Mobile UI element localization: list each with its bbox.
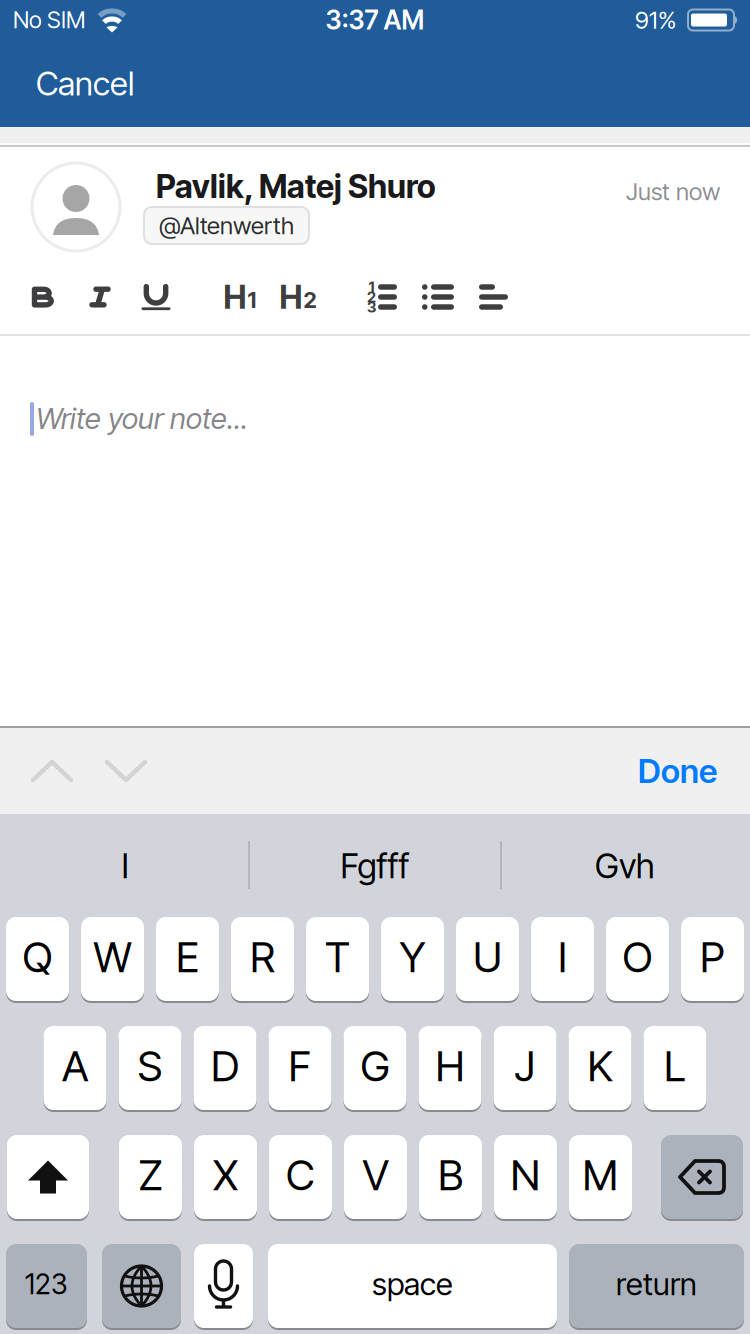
button[interactable]: Z — [119, 1135, 182, 1221]
staticText: O — [622, 932, 652, 982]
button[interactable]: Numbered list — [354, 275, 410, 319]
button[interactable]: Cancel — [36, 63, 134, 103]
button[interactable]: M — [569, 1135, 632, 1221]
button[interactable]: P — [681, 917, 744, 1003]
staticText: S — [137, 1041, 162, 1091]
staticText: 1 — [368, 278, 374, 296]
staticText: Z — [138, 1150, 162, 1200]
staticText: @Altenwerth — [159, 211, 294, 240]
staticText: No SIM — [13, 6, 85, 34]
button[interactable]: X — [194, 1135, 257, 1221]
staticText: L — [664, 1041, 686, 1091]
button[interactable]: @Altenwerth — [144, 207, 309, 244]
staticText: 3 — [367, 298, 376, 316]
staticText: Write your note... — [36, 401, 248, 436]
staticText: F — [288, 1041, 311, 1091]
button[interactable]: I — [0, 845, 250, 886]
button[interactable]: H — [418, 1026, 481, 1112]
staticText: H — [223, 278, 246, 316]
button[interactable]: Y — [381, 917, 444, 1003]
button[interactable]: V — [344, 1135, 407, 1221]
staticText: return — [616, 1265, 697, 1303]
button[interactable]: A — [43, 1026, 106, 1112]
button[interactable]: space — [268, 1244, 557, 1330]
staticText: A — [62, 1041, 88, 1091]
staticText: Gvh — [595, 845, 655, 886]
button[interactable]: O — [606, 917, 669, 1003]
button[interactable]: T — [306, 917, 369, 1003]
button[interactable]: Next keyboard — [102, 1244, 181, 1330]
button[interactable]: Shift — [7, 1135, 89, 1221]
button[interactable]: Heading 1 — [212, 275, 268, 319]
button[interactable]: S — [118, 1026, 181, 1112]
staticText: J — [514, 1041, 535, 1091]
staticText: D — [211, 1041, 239, 1091]
button[interactable]: R — [231, 917, 294, 1003]
staticText: G — [360, 1041, 389, 1091]
staticText: H — [279, 278, 302, 316]
staticText: N — [510, 1150, 540, 1200]
staticText: 2 — [303, 287, 316, 313]
staticText: W — [93, 932, 131, 982]
staticText: Done — [638, 751, 717, 791]
staticText: X — [213, 1150, 238, 1200]
staticText: V — [362, 1150, 388, 1200]
staticText: 123 — [25, 1267, 68, 1301]
button[interactable]: K — [568, 1026, 631, 1112]
staticText: C — [286, 1150, 315, 1200]
button[interactable]: I — [531, 917, 594, 1003]
button[interactable]: Q — [6, 917, 69, 1003]
staticText: 1 — [247, 287, 256, 313]
button[interactable]: N — [494, 1135, 557, 1221]
staticText: K — [587, 1041, 612, 1091]
button[interactable]: Underline — [128, 275, 184, 319]
staticText: U — [473, 932, 502, 982]
staticText: Fgfff — [340, 845, 409, 886]
staticText: 91% — [635, 5, 676, 34]
staticText: I — [121, 845, 128, 886]
button[interactable]: L — [643, 1026, 706, 1112]
button[interactable]: Bold — [16, 275, 72, 319]
button[interactable]: B — [419, 1135, 482, 1221]
button[interactable]: Paragraph style — [466, 275, 521, 319]
staticText: P — [700, 932, 725, 982]
staticText: B — [438, 1150, 463, 1200]
staticText: Just now — [626, 177, 720, 206]
button[interactable]: Dictate — [194, 1244, 253, 1330]
button[interactable]: W — [81, 917, 144, 1003]
button[interactable]: Numbers — [6, 1244, 87, 1330]
staticText: Pavlik, Matej Shuro — [156, 167, 436, 206]
button[interactable]: Italic — [72, 275, 128, 319]
button[interactable]: Delete — [661, 1135, 743, 1221]
button[interactable]: Heading 2 — [268, 275, 328, 319]
button[interactable]: F — [268, 1026, 331, 1112]
button[interactable]: Bulleted list — [410, 275, 466, 319]
button[interactable]: C — [269, 1135, 332, 1221]
staticText: E — [176, 932, 199, 982]
button[interactable]: J — [493, 1026, 556, 1112]
staticText: Cancel — [36, 63, 134, 103]
staticText: Q — [22, 932, 52, 982]
staticText: Y — [399, 932, 425, 982]
staticText: 3:37 AM — [325, 4, 424, 36]
button[interactable]: Done — [638, 751, 717, 791]
staticText: T — [325, 932, 350, 982]
button[interactable]: Gvh — [500, 845, 750, 886]
button[interactable]: D — [193, 1026, 256, 1112]
staticText: H — [435, 1041, 464, 1091]
button[interactable]: E — [156, 917, 219, 1003]
button[interactable]: Next field — [105, 760, 147, 782]
staticText: space — [372, 1265, 453, 1303]
button[interactable]: Fgfff — [250, 845, 500, 886]
button[interactable]: U — [456, 917, 519, 1003]
staticText: 2 — [367, 288, 376, 306]
button[interactable]: return — [569, 1244, 744, 1330]
button[interactable]: Previous field — [31, 760, 73, 782]
staticText: M — [582, 1150, 618, 1200]
staticText: I — [558, 932, 567, 982]
staticText: R — [250, 932, 275, 982]
button[interactable]: G — [343, 1026, 406, 1112]
